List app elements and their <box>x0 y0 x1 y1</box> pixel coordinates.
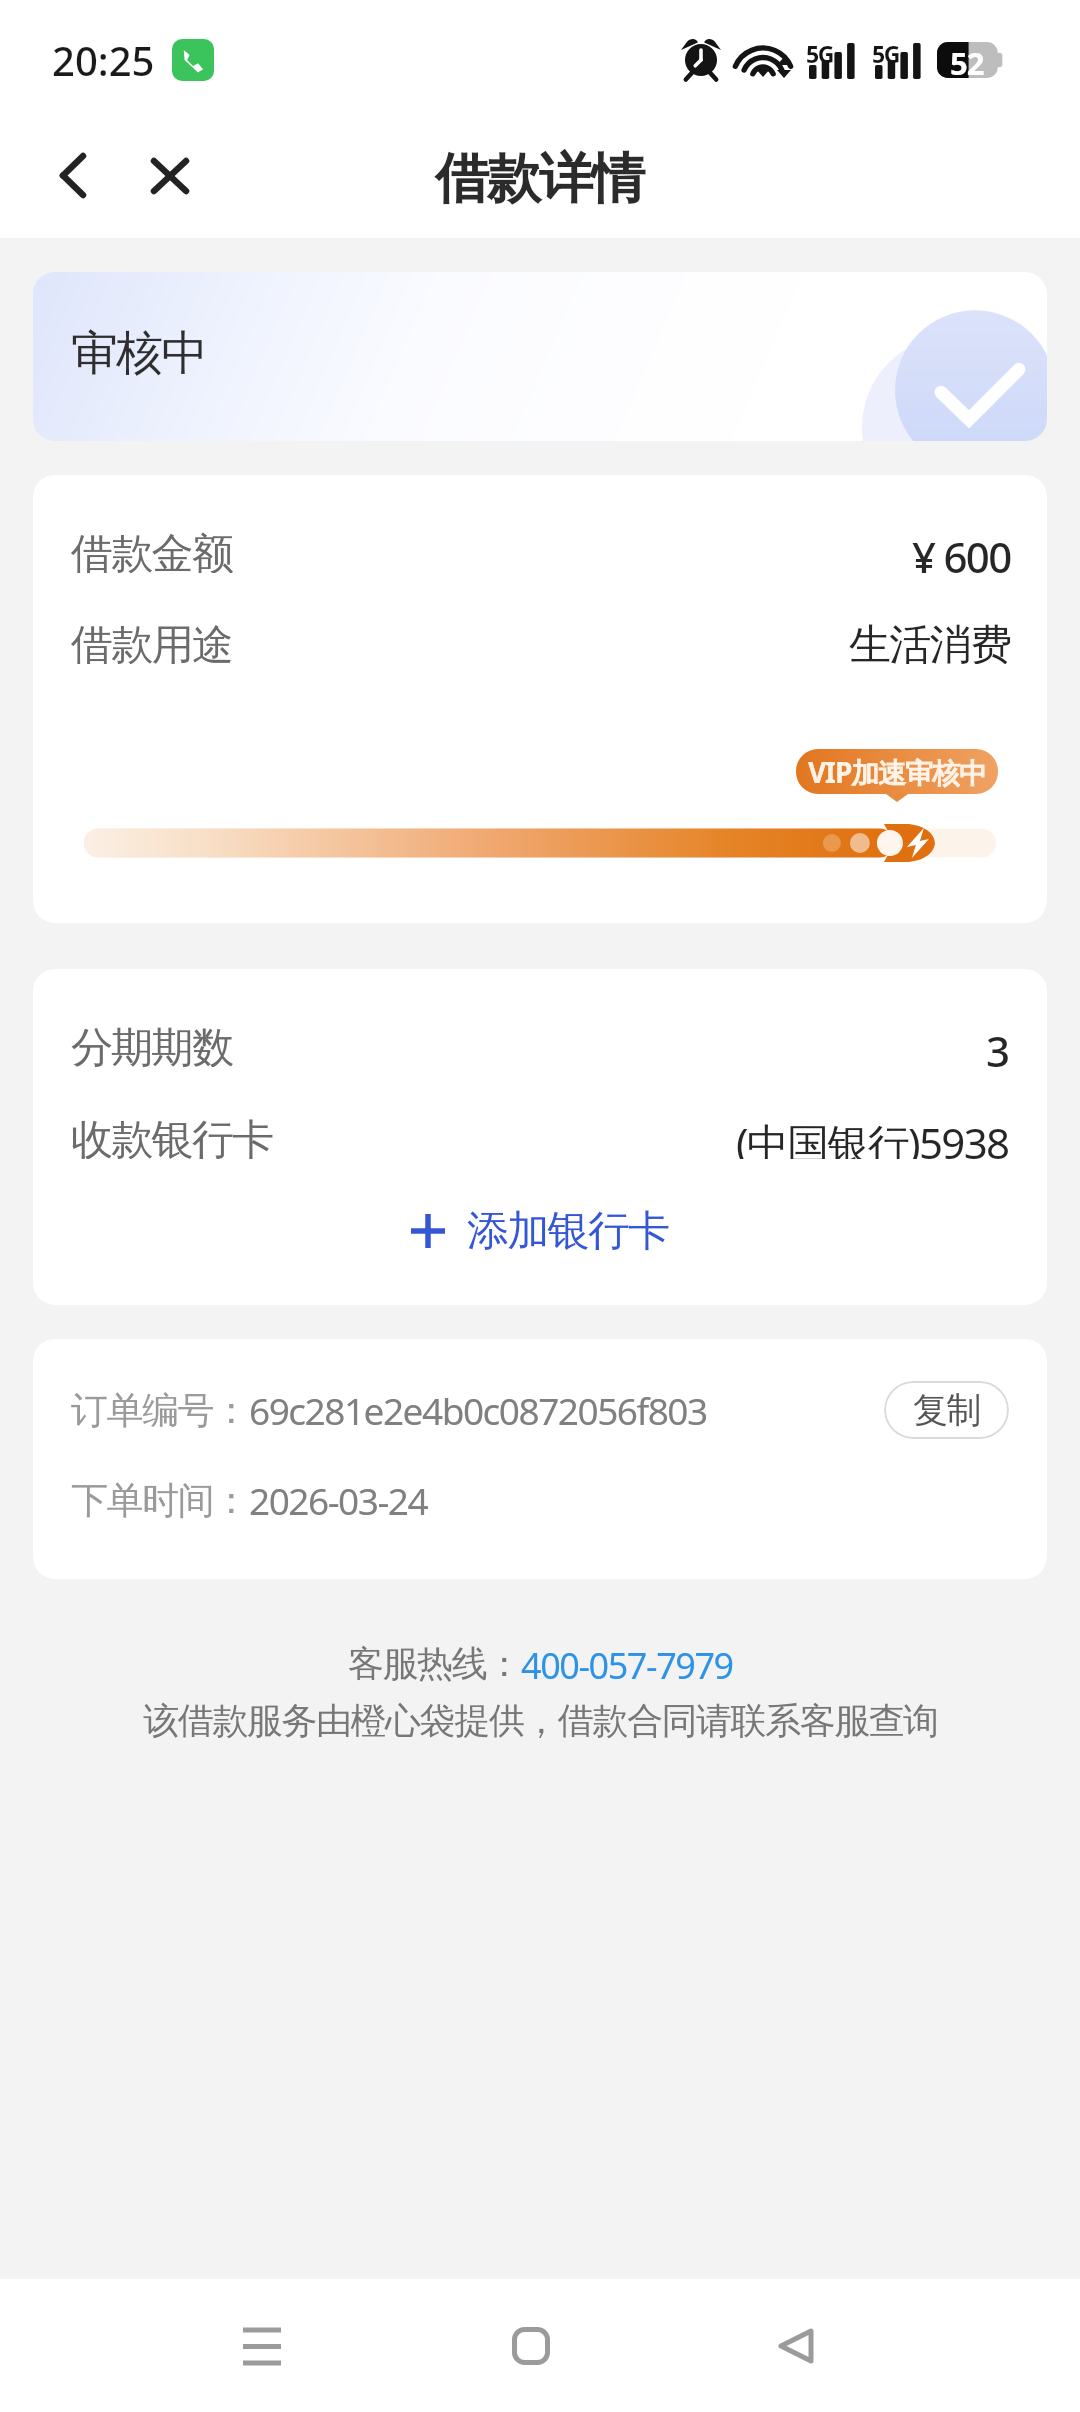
staticText: 复制 <box>913 1388 981 1432</box>
staticText: 订单编号： <box>71 1387 249 1434</box>
staticText: 客服热线： <box>348 1641 521 1686</box>
button[interactable]: Close <box>132 138 208 214</box>
staticText: 2026-03-24 <box>249 1475 428 1525</box>
staticText: 52 <box>950 42 984 78</box>
button[interactable]: 复制 <box>884 1381 1009 1439</box>
button[interactable]: Back <box>35 137 111 213</box>
staticText: 借款用途 <box>71 619 233 664</box>
staticText: 借款详情 <box>436 145 644 213</box>
button[interactable]: 添加银行卡 <box>71 1199 1009 1263</box>
button[interactable]: Back <box>746 2296 846 2396</box>
staticText: 收款银行卡 <box>71 1114 273 1159</box>
staticText: 5G <box>872 38 900 69</box>
staticText: (中国银行)5938 <box>736 1114 1009 1159</box>
button[interactable]: Home <box>481 2296 581 2396</box>
staticText: VIP加速审核中 <box>808 753 986 791</box>
staticText: 该借款服务由橙心袋提供，借款合同请联系客服查询 <box>143 1698 938 1743</box>
staticText: ¥ 600 <box>912 528 1011 573</box>
staticText: 添加银行卡 <box>467 1205 669 1258</box>
staticText: 20:25 <box>52 33 155 87</box>
staticText: 审核中 <box>71 324 207 383</box>
staticText: 借款金额 <box>71 528 233 573</box>
staticText: 分期期数 <box>71 1022 233 1067</box>
staticText: 3 <box>986 1022 1009 1067</box>
staticText: 69c281e2e4b0c0872056f803 <box>249 1385 707 1435</box>
staticText: 生活消费 <box>849 619 1011 664</box>
staticText: 下单时间： <box>71 1477 249 1524</box>
staticText: 5G <box>806 38 834 69</box>
button[interactable]: Recent apps <box>212 2296 312 2396</box>
button[interactable]: 400-057-7979 <box>521 1641 733 1690</box>
